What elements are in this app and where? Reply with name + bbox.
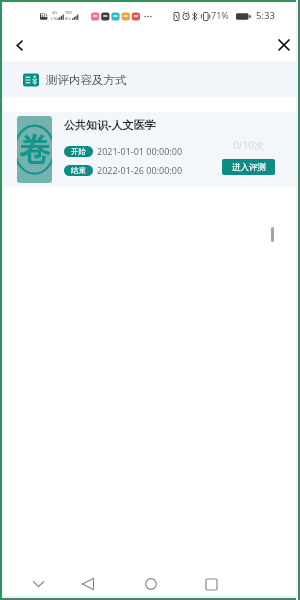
button[interactable]: 卷 — [3, 112, 297, 187]
staticText: HD — [41, 12, 48, 18]
staticText: 结束 — [71, 166, 86, 175]
staticText: 公共知识-人文医学 — [64, 117, 156, 132]
button[interactable]: 进入评测 — [222, 159, 275, 175]
staticText: 卷 — [19, 130, 50, 169]
staticText: 5:33 — [256, 9, 275, 22]
button[interactable]: Close — [271, 32, 297, 58]
staticText: 进入评测 — [232, 162, 266, 173]
staticText: 2021-01-01 00:00:00 — [97, 145, 183, 157]
button[interactable]: Back — [75, 572, 100, 596]
button[interactable]: Back — [6, 32, 32, 58]
staticText: 测评内容及方式 — [46, 73, 127, 87]
staticText: 71% — [211, 9, 229, 21]
button[interactable]: Hide keyboard — [26, 572, 51, 596]
button[interactable]: Recents — [199, 572, 224, 596]
staticText: B/s — [65, 16, 72, 21]
staticText: 0/10次 — [233, 138, 264, 152]
staticText: 789 — [65, 10, 72, 15]
button[interactable]: Home — [138, 572, 163, 596]
staticText: 2022-01-26 00:00:00 — [97, 164, 183, 176]
staticText: 开始 — [71, 147, 86, 156]
staticText: 4G — [52, 10, 58, 15]
staticText: LTE — [51, 16, 58, 21]
